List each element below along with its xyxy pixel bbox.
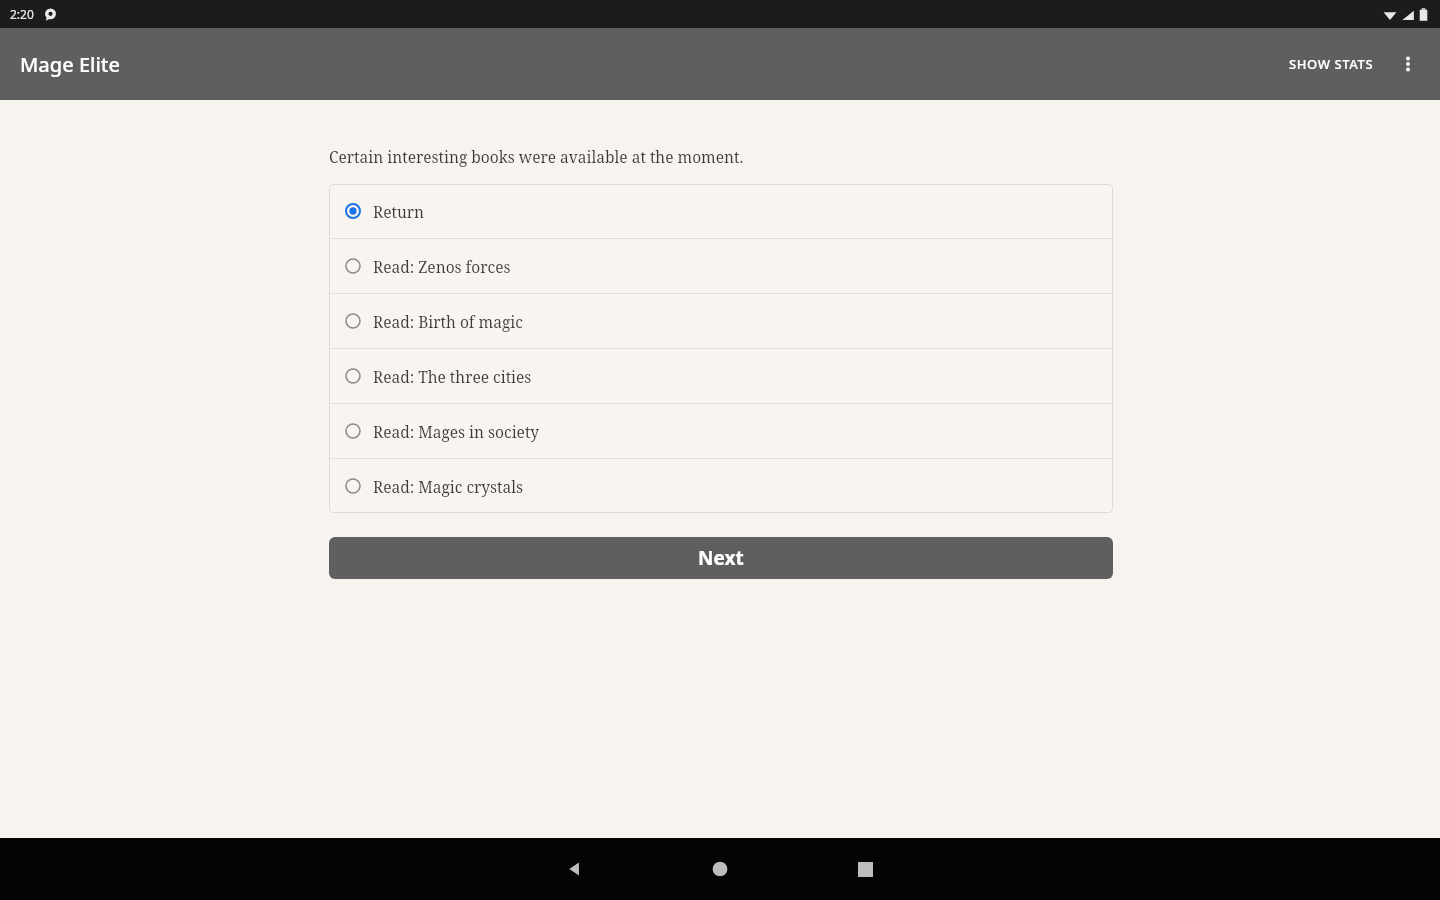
button[interactable]: Recent apps (830, 838, 900, 900)
staticText: SHOW STATS (1289, 55, 1374, 73)
staticText: Return (373, 201, 425, 222)
button[interactable]: Back (540, 838, 610, 900)
button[interactable]: Home (685, 838, 755, 900)
staticText: Read: Zenos forces (373, 256, 511, 277)
button[interactable]: Read: The three cities (329, 349, 1113, 403)
staticText: Certain interesting books were available… (329, 146, 744, 167)
staticText: Read: The three cities (373, 366, 532, 387)
staticText: Read: Magic crystals (373, 476, 524, 497)
staticText: Read: Birth of magic (373, 311, 523, 332)
button[interactable]: Read: Mages in society (329, 404, 1113, 458)
button[interactable]: Read: Magic crystals (329, 459, 1113, 513)
button[interactable]: SHOW STATS (1279, 43, 1384, 85)
staticText: Next (698, 545, 744, 571)
staticText: Mage Elite (20, 51, 120, 78)
button[interactable]: More options (1384, 40, 1432, 88)
button[interactable]: Return (329, 184, 1113, 238)
button[interactable]: Read: Birth of magic (329, 294, 1113, 348)
button[interactable]: Read: Zenos forces (329, 239, 1113, 293)
staticText: 2:20 (10, 6, 34, 22)
staticText: Read: Mages in society (373, 421, 540, 442)
button[interactable]: Next (329, 537, 1113, 579)
